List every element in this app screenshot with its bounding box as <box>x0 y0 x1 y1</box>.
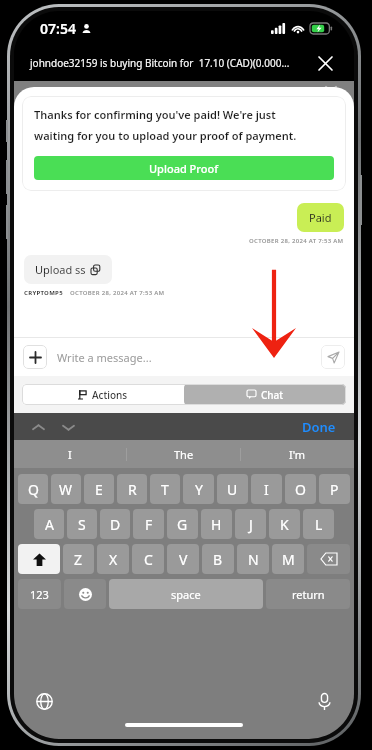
staticText: F <box>145 515 153 534</box>
staticText: O <box>295 480 306 499</box>
staticText: Done <box>302 418 336 436</box>
button[interactable]: Chat <box>184 384 346 405</box>
button[interactable]: I <box>251 474 282 504</box>
staticText: Q <box>28 480 39 499</box>
button[interactable]: M <box>272 544 304 574</box>
button[interactable]: Add attachment <box>23 345 47 369</box>
staticText: J <box>249 515 253 534</box>
staticText: I'm <box>289 447 306 462</box>
staticText: return <box>292 587 325 602</box>
button[interactable]: The <box>127 440 240 468</box>
button[interactable]: L <box>303 509 334 539</box>
staticText: B <box>213 550 223 569</box>
button[interactable]: Dictate <box>312 689 336 713</box>
button[interactable]: V <box>167 544 199 574</box>
button[interactable]: 123 <box>18 579 61 609</box>
staticText: I <box>264 480 269 499</box>
staticText: R <box>128 480 137 499</box>
staticText: Z <box>74 550 83 569</box>
button[interactable]: K <box>269 509 300 539</box>
button[interactable]: Backspace <box>307 544 350 574</box>
button[interactable]: space <box>109 579 263 609</box>
staticText: C <box>144 550 153 569</box>
staticText: D <box>110 515 121 534</box>
button[interactable]: P <box>319 474 350 504</box>
staticText: johndoe32159 is buying Bitcoin for 17.10… <box>30 56 312 70</box>
button[interactable]: G <box>167 509 198 539</box>
button[interactable]: Actions <box>22 384 184 405</box>
staticText: space <box>171 587 201 602</box>
staticText: Thanks for confirming you've paid! We're… <box>34 107 276 122</box>
button[interactable]: F <box>133 509 164 539</box>
staticText: U <box>227 480 238 499</box>
button[interactable]: I'm <box>241 440 354 468</box>
staticText: S <box>78 515 86 534</box>
staticText: A <box>45 515 54 534</box>
staticText: W <box>59 480 73 499</box>
staticText: H <box>211 515 222 534</box>
button[interactable]: return <box>266 579 350 609</box>
staticText: P <box>330 480 339 499</box>
staticText: 07:54 <box>40 19 76 38</box>
button[interactable]: Done <box>298 414 340 440</box>
staticText: Upload Proof <box>149 161 219 176</box>
button[interactable]: U <box>217 474 248 504</box>
button[interactable]: D <box>100 509 130 539</box>
staticText: Write a message... <box>57 350 152 365</box>
staticText: T <box>161 480 169 499</box>
staticText: Y <box>195 480 203 499</box>
button[interactable]: R <box>117 474 147 504</box>
staticText: M <box>282 550 295 569</box>
button[interactable]: S <box>67 509 97 539</box>
button[interactable]: O <box>285 474 316 504</box>
button[interactable]: Shift <box>18 544 60 574</box>
staticText: OCTOBER 28, 2024 AT 7:53 AM <box>249 237 344 245</box>
button[interactable]: Send <box>321 345 345 369</box>
button[interactable]: W <box>51 474 81 504</box>
button[interactable]: J <box>235 509 266 539</box>
button[interactable]: C <box>132 544 164 574</box>
staticText: G <box>177 515 188 534</box>
staticText: 123 <box>30 587 49 602</box>
staticText: N <box>248 550 259 569</box>
button[interactable]: X <box>97 544 129 574</box>
button[interactable]: H <box>201 509 232 539</box>
staticText: waiting for you to upload your proof of … <box>34 128 297 143</box>
staticText: K <box>280 515 289 534</box>
button[interactable]: Previous field <box>28 417 48 437</box>
staticText: Actions <box>92 388 128 402</box>
button[interactable]: I <box>14 440 126 468</box>
button[interactable]: N <box>237 544 269 574</box>
staticText: E <box>95 480 103 499</box>
staticText: I <box>68 447 72 462</box>
button[interactable]: Q <box>18 474 48 504</box>
button[interactable]: Emoji <box>64 579 106 609</box>
button[interactable]: Change keyboard <box>32 689 56 713</box>
button[interactable]: Close <box>312 50 338 76</box>
button[interactable]: E <box>84 474 114 504</box>
button[interactable]: B <box>202 544 234 574</box>
button[interactable]: T <box>150 474 180 504</box>
button[interactable]: Z <box>63 544 94 574</box>
staticText: Chat <box>261 388 284 402</box>
staticText: V <box>179 550 188 569</box>
staticText: OCTOBER 28, 2024 AT 7:53 AM <box>70 289 165 297</box>
staticText: The <box>174 447 194 462</box>
staticText: L <box>315 515 323 534</box>
button[interactable]: A <box>34 509 64 539</box>
button[interactable]: Y <box>183 474 214 504</box>
staticText: Upload ss <box>35 262 86 277</box>
button[interactable]: Next field <box>58 417 78 437</box>
button[interactable]: Write a message... <box>57 350 321 365</box>
staticText: X <box>109 550 118 569</box>
button[interactable]: Upload Proof <box>34 156 334 180</box>
staticText: CRYPTOMP5 <box>24 289 63 297</box>
staticText: Paid <box>309 210 332 225</box>
